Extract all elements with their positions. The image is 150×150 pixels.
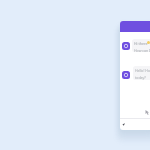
button[interactable]: Assistant avatar [122,71,130,79]
other: Pointer [145,110,150,115]
button[interactable]: Hello! How [133,66,150,80]
button[interactable]: Assistant avatar [122,42,130,50]
staticText: Hello! How [135,68,150,73]
button[interactable]: Send message [120,119,150,130]
button[interactable]: Chat top bar [120,21,150,32]
staticText: How can I help [134,48,150,52]
staticText: Hi there [134,41,148,46]
button[interactable]: Hi there [132,39,150,52]
staticText: today? [135,75,146,80]
